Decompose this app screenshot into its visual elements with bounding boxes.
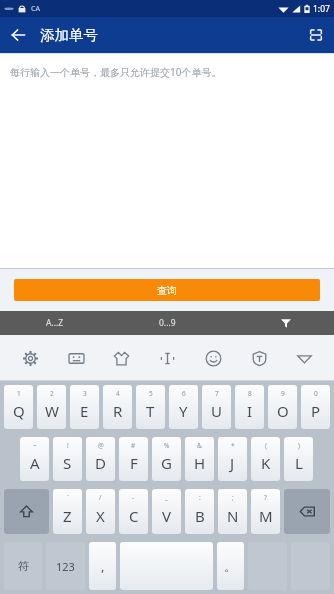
button[interactable]: Hide keyboard (288, 342, 320, 374)
staticText: J (230, 453, 235, 473)
button[interactable]: ? (251, 489, 280, 534)
staticText: 1 (17, 389, 21, 398)
button[interactable]: 9 (268, 385, 297, 429)
button[interactable]: , (89, 542, 116, 590)
staticText: 添加单号 (40, 26, 98, 44)
staticText: ( (265, 441, 267, 450)
staticText: 6 (182, 389, 186, 398)
button[interactable]: 6 (169, 385, 198, 429)
button[interactable]: Settings (14, 342, 46, 374)
button[interactable]: A...Z (0, 311, 110, 335)
staticText: CA (31, 4, 40, 14)
button[interactable]: Privacy (243, 342, 275, 374)
button[interactable]: ; (218, 489, 247, 534)
button[interactable]: _ (152, 489, 181, 534)
staticText: F (130, 453, 138, 473)
button[interactable]: 0 (301, 385, 330, 429)
staticText: C (129, 506, 139, 526)
button[interactable]: * (218, 437, 247, 481)
staticText: 符 (18, 559, 29, 573)
staticText: 9 (281, 389, 285, 398)
button[interactable]: Skin (105, 342, 137, 374)
button[interactable]: ( (251, 437, 280, 481)
staticText: : (199, 493, 201, 502)
staticText: ? (264, 493, 267, 502)
staticText: 。 (224, 558, 237, 574)
staticText: A...Z (46, 317, 64, 329)
staticText: P (311, 401, 321, 421)
staticText: 0 (314, 389, 318, 398)
button[interactable]: - (119, 489, 148, 534)
staticText: I (247, 401, 253, 421)
staticText: S (63, 453, 72, 473)
button[interactable]: ! (53, 437, 82, 481)
staticText: - (132, 493, 135, 502)
staticText: * (231, 441, 235, 450)
button[interactable]: 5 (136, 385, 165, 429)
button[interactable]: 7 (202, 385, 231, 429)
button[interactable]: 1 (4, 385, 33, 429)
button[interactable]: Emoji (197, 342, 229, 374)
button[interactable]: Space (120, 542, 213, 590)
button[interactable]: Filter (276, 313, 296, 333)
button[interactable]: @ (86, 437, 115, 481)
staticText: 5 (149, 389, 153, 398)
button[interactable]: Back (0, 17, 36, 53)
button[interactable]: ~ (20, 437, 49, 481)
staticText: ~ (33, 441, 37, 450)
button[interactable]: 8 (235, 385, 264, 429)
staticText: M (259, 506, 273, 526)
button[interactable]: Input method (60, 342, 92, 374)
staticText: % (164, 441, 170, 450)
staticText: O (277, 401, 289, 421)
button[interactable]: 2 (37, 385, 66, 429)
staticText: 每行输入一个单号，最多只允许提交10个单号。 (10, 65, 222, 79)
staticText: K (261, 453, 271, 473)
staticText: @ (98, 441, 104, 450)
staticText: U (211, 401, 222, 421)
staticText: 3 (83, 389, 87, 398)
button[interactable]: Shift (4, 489, 49, 534)
staticText: 查询 (157, 284, 177, 297)
button[interactable]: 123 (46, 542, 85, 590)
button[interactable]: # (119, 437, 148, 481)
staticText: L (295, 453, 303, 473)
button[interactable]: ) (284, 437, 313, 481)
staticText: ) (298, 441, 300, 450)
button[interactable]: 查询 (14, 279, 320, 301)
staticText: / (99, 493, 102, 502)
button[interactable]: Backspace (284, 489, 330, 534)
button[interactable]: / (86, 489, 115, 534)
staticText: 2 (50, 389, 54, 398)
button[interactable]: 符 (4, 542, 42, 590)
staticText: R (113, 401, 123, 421)
staticText: , (101, 557, 105, 575)
staticText: _ (165, 493, 168, 502)
button[interactable]: ` (53, 489, 82, 534)
staticText: Q (13, 401, 25, 421)
button[interactable]: Cursor move (151, 342, 183, 374)
staticText: T (146, 401, 155, 421)
staticText: 4 (116, 389, 120, 398)
staticText: H (194, 453, 206, 473)
staticText: 0...9 (159, 317, 176, 329)
button[interactable]: 。 (217, 542, 244, 590)
staticText: Y (179, 401, 188, 421)
staticText: ; (232, 493, 234, 502)
button[interactable]: 0...9 (159, 317, 176, 329)
button[interactable]: % (152, 437, 181, 481)
staticText: E (80, 401, 89, 421)
staticText: V (162, 506, 172, 526)
staticText: 8 (248, 389, 252, 398)
staticText: & (197, 441, 202, 450)
staticText: 123 (56, 559, 75, 574)
button[interactable]: 4 (103, 385, 132, 429)
button[interactable]: 3 (70, 385, 99, 429)
button[interactable]: & (185, 437, 214, 481)
staticText: # (131, 441, 136, 450)
button[interactable]: Scan code (298, 17, 334, 53)
staticText: W (45, 401, 59, 421)
button[interactable]: : (185, 489, 214, 534)
